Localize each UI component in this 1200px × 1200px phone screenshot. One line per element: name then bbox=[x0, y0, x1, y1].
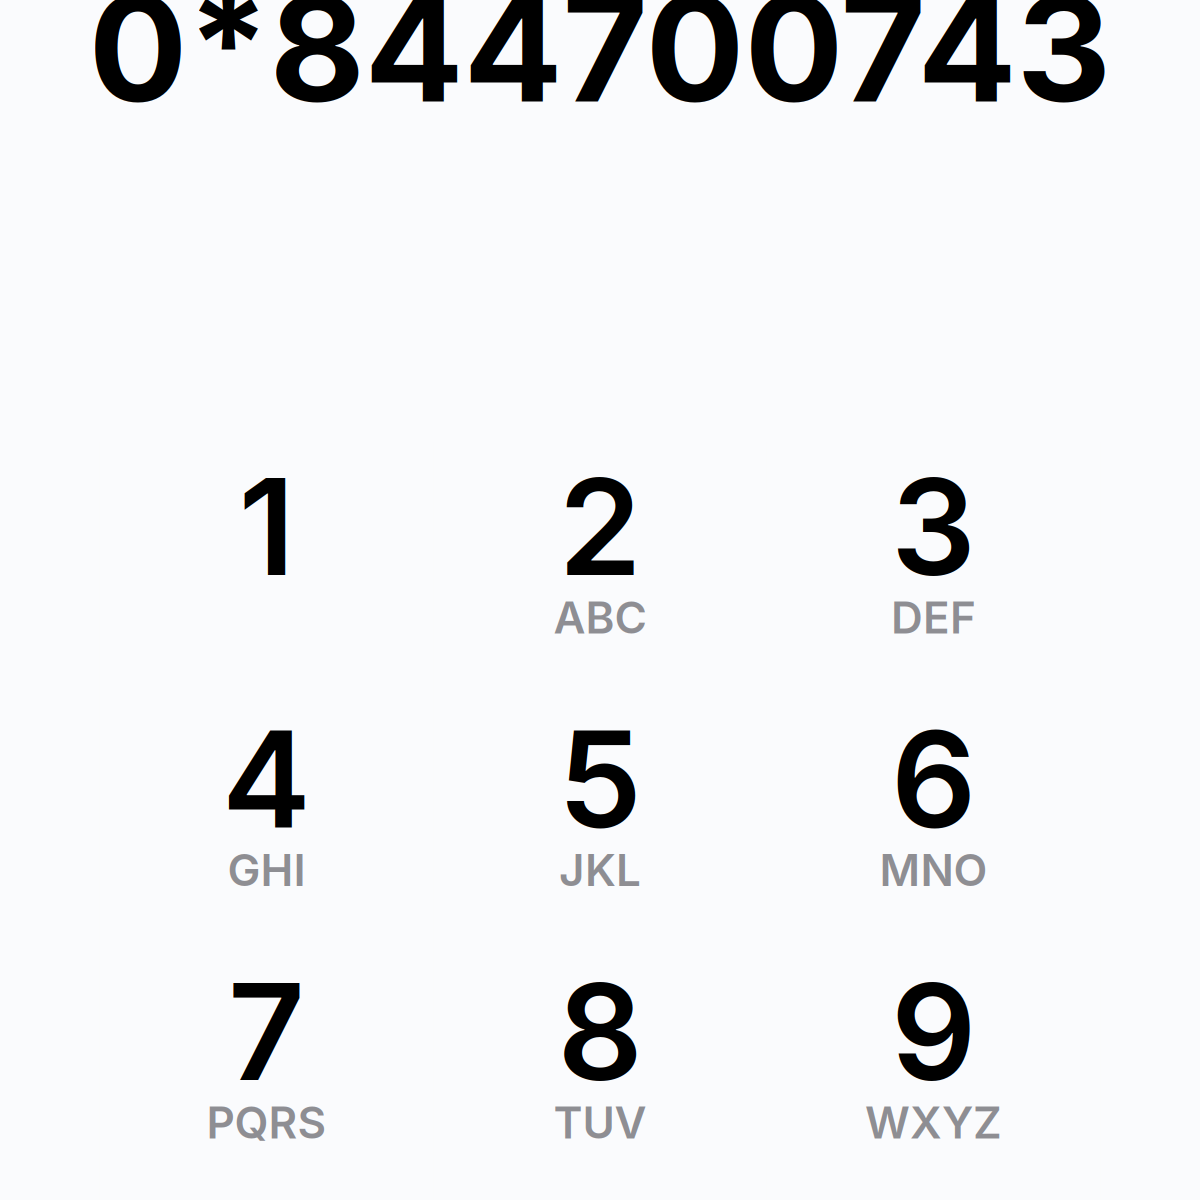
staticText: 0*844700743 bbox=[88, 0, 1111, 137]
staticText: 2 bbox=[558, 446, 641, 607]
staticText: WXYZ bbox=[865, 1096, 1002, 1149]
button[interactable]: 3 DEF bbox=[767, 442, 1100, 695]
button[interactable]: 4 GHI bbox=[100, 695, 433, 947]
staticText: 6 bbox=[891, 698, 976, 860]
staticText: 4 bbox=[222, 698, 311, 860]
button[interactable]: 9 WXYZ bbox=[767, 947, 1100, 1200]
button[interactable]: 6 MNO bbox=[767, 695, 1100, 947]
staticText: 9 bbox=[891, 951, 976, 1112]
button[interactable]: 2 ABC bbox=[433, 442, 767, 695]
button[interactable]: 7 PQRS bbox=[100, 947, 433, 1200]
staticText: GHI bbox=[227, 843, 305, 897]
button[interactable]: Dialled number 0*844700743 bbox=[0, 0, 1200, 137]
staticText: PQRS bbox=[206, 1096, 326, 1149]
staticText: ABC bbox=[553, 591, 646, 644]
staticText: JKL bbox=[559, 843, 641, 897]
staticText: 3 bbox=[891, 446, 976, 607]
staticText: 1 bbox=[238, 446, 294, 607]
staticText: MNO bbox=[879, 843, 987, 897]
staticText: DEF bbox=[891, 591, 976, 644]
staticText: 7 bbox=[228, 951, 305, 1112]
button[interactable]: 8 TUV bbox=[433, 947, 767, 1200]
staticText: TUV bbox=[553, 1096, 646, 1149]
staticText: 8 bbox=[557, 951, 642, 1112]
button[interactable]: 1 bbox=[100, 442, 433, 695]
staticText: 5 bbox=[558, 698, 642, 860]
button[interactable]: 5 JKL bbox=[433, 695, 767, 947]
